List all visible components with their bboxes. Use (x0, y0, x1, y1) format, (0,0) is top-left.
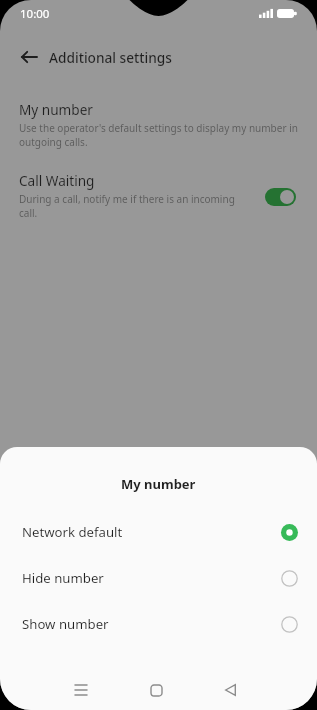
staticText: Call Waiting (19, 171, 95, 190)
staticText: During a call, notify me if there is an … (19, 192, 249, 220)
staticText: Show number (22, 615, 281, 633)
button[interactable]: Show number (0, 601, 317, 647)
staticText: Additional settings (49, 48, 173, 67)
staticText: Hide number (22, 569, 281, 587)
button[interactable]: Home (134, 670, 179, 710)
button[interactable]: Back (16, 44, 42, 70)
staticText: Network default (22, 523, 281, 541)
staticText: My number (19, 100, 93, 119)
button[interactable]: Call Waiting (0, 171, 317, 220)
staticText: My number (121, 475, 196, 493)
staticText: 10:00 (20, 6, 50, 22)
button[interactable]: Hide number (0, 555, 317, 601)
button[interactable]: Call waiting switch (265, 188, 296, 206)
button[interactable]: Back (208, 670, 253, 710)
button[interactable]: My number (0, 100, 317, 149)
staticText: Use the operator's default settings to d… (19, 121, 298, 149)
button[interactable]: Network default (0, 509, 317, 555)
button[interactable]: Recent apps (58, 670, 103, 710)
